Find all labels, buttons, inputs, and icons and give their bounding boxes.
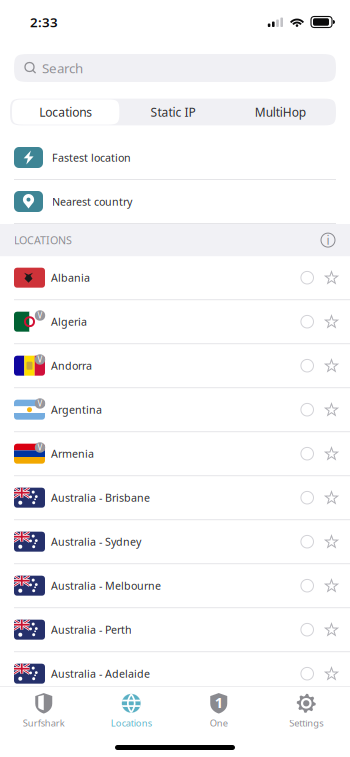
staticText: 1 [215,693,223,712]
button[interactable]: Australia - Perth [0,608,350,652]
button[interactable]: Settings [262,688,350,733]
button[interactable]: Surfshark [0,688,87,733]
staticText: Andorra [51,359,92,373]
staticText: V [37,354,42,365]
button[interactable]: Australia - Melbourne [0,564,350,608]
staticText: Australia - Sydney [51,535,141,549]
staticText: One [210,717,228,729]
staticText: V [37,310,42,321]
staticText: 2:33 [30,13,58,31]
button[interactable]: V [0,344,350,388]
staticText: Argentina [51,403,102,417]
button[interactable]: Albania [0,256,350,300]
staticText: Search [42,59,83,77]
button[interactable]: V [0,388,350,432]
button[interactable]: Static IP [119,99,227,124]
staticText: Algeria [51,315,87,329]
button[interactable]: 1 [175,688,262,733]
button[interactable]: Australia - Adelaide [0,652,350,696]
staticText: V [37,398,42,409]
button[interactable]: V [0,300,350,344]
staticText: LOCATIONS [14,233,72,247]
staticText: V [37,442,42,453]
button[interactable]: Fastest location [0,136,350,180]
staticText: i [326,232,329,248]
button[interactable]: Australia - Sydney [0,520,350,564]
staticText: Locations [111,717,152,729]
button[interactable]: Australia - Brisbane [0,476,350,520]
staticText: MultiHop [255,104,306,120]
staticText: Australia - Melbourne [51,579,161,593]
button[interactable]: Nearest country [0,180,350,224]
staticText: Locations [39,104,92,120]
staticText: Australia - Brisbane [51,491,150,505]
staticText: Nearest country [52,194,132,209]
staticText: Australia - Adelaide [51,667,150,681]
staticText: Surfshark [23,717,65,729]
button[interactable]: Location info [318,230,338,250]
staticText: Armenia [51,447,94,461]
staticText: Fastest location [52,150,131,165]
staticText: Australia - Perth [51,623,132,637]
button[interactable]: Locations [12,99,119,124]
staticText: Static IP [150,104,195,120]
button[interactable]: Locations [87,688,175,733]
button[interactable]: MultiHop [227,99,334,124]
staticText: Settings [289,717,323,729]
button[interactable]: Search [0,44,350,99]
button[interactable]: V [0,432,350,476]
staticText: Albania [51,271,90,285]
